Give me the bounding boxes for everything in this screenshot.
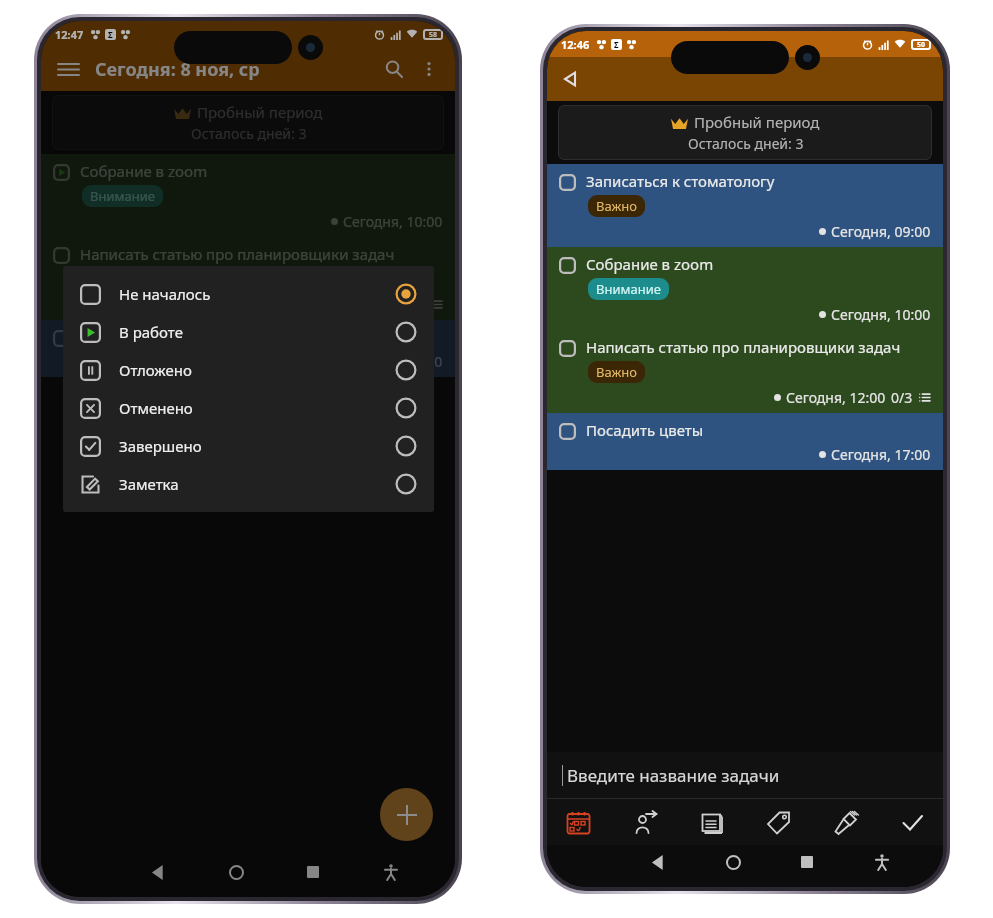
- staticText: Посадить цветы: [80, 327, 443, 347]
- button[interactable]: Не началось: [63, 275, 434, 313]
- button[interactable]: Home: [223, 859, 249, 885]
- staticText: 12:46: [561, 37, 590, 52]
- button[interactable]: Search: [379, 54, 409, 84]
- staticText: Сегодня, 10:00: [831, 305, 931, 324]
- button[interactable]: Back: [561, 64, 591, 94]
- staticText: Внимание: [90, 187, 155, 205]
- button[interactable]: Back: [145, 859, 171, 885]
- staticText: Собрание в zoom: [80, 161, 443, 181]
- staticText: Осталось дней: 3: [191, 124, 307, 143]
- staticText: Важно: [596, 363, 637, 381]
- button[interactable]: Tag: [757, 801, 799, 843]
- button[interactable]: Save: [891, 801, 933, 843]
- button[interactable]: Написать статью про планировщики задач: [547, 330, 943, 413]
- button[interactable]: Recents: [300, 859, 326, 885]
- button[interactable]: Введите название задачи: [547, 752, 943, 798]
- staticText: Написать статью про планировщики задач: [586, 337, 931, 357]
- staticText: Сегодня, 09:00: [831, 222, 931, 241]
- staticText: Отменено: [119, 398, 395, 418]
- staticText: Σ: [108, 29, 113, 40]
- button[interactable]: Отложено: [63, 351, 434, 389]
- staticText: 0/3: [403, 295, 425, 314]
- button[interactable]: Заметка: [63, 465, 434, 503]
- button[interactable]: Отменено: [63, 389, 434, 427]
- staticText: Важно: [90, 270, 131, 288]
- staticText: 12:47: [55, 27, 84, 42]
- button[interactable]: Посадить цветы: [547, 413, 943, 470]
- button[interactable]: Assign person: [624, 801, 666, 843]
- button[interactable]: Собрание в zoom: [547, 247, 943, 330]
- button[interactable]: Пробный период: [558, 105, 932, 160]
- staticText: Не началось: [119, 284, 395, 304]
- staticText: Важно: [596, 197, 637, 215]
- staticText: Осталось дней: 3: [688, 134, 804, 153]
- staticText: Сегодня, 17:00: [343, 352, 443, 371]
- button[interactable]: Back: [645, 849, 671, 875]
- staticText: Заметка: [119, 474, 395, 494]
- staticText: Посадить цветы: [586, 420, 931, 440]
- button[interactable]: Home: [720, 849, 746, 875]
- button[interactable]: More options: [415, 55, 443, 83]
- staticText: Собрание в zoom: [586, 254, 931, 274]
- staticText: Σ: [614, 39, 619, 50]
- button[interactable]: Пробный период: [52, 95, 444, 150]
- staticText: Сегодня, 12:00: [786, 388, 886, 407]
- staticText: В работе: [119, 322, 395, 342]
- button[interactable]: Menu: [53, 54, 83, 84]
- button[interactable]: Завершено: [63, 427, 434, 465]
- button[interactable]: Notes: [691, 801, 733, 843]
- button[interactable]: Собрание в zoom: [41, 154, 455, 237]
- button[interactable]: Записаться к стоматологу: [547, 164, 943, 247]
- staticText: 0/3: [891, 388, 913, 407]
- staticText: Завершено: [119, 436, 395, 456]
- button[interactable]: Set date: [557, 801, 599, 843]
- staticText: Отложено: [119, 360, 395, 380]
- button[interactable]: Color: [824, 801, 866, 843]
- staticText: Сегодня: 8 ноя, ср: [95, 57, 379, 82]
- button[interactable]: Accessibility: [869, 849, 895, 875]
- button[interactable]: В работе: [63, 313, 434, 351]
- staticText: Пробный период: [694, 112, 820, 132]
- button[interactable]: Посадить цветы: [41, 320, 455, 377]
- staticText: Сегодня, 10:00: [343, 212, 443, 231]
- staticText: Написать статью про планировщики задач: [80, 244, 443, 264]
- staticText: Сегодня, 17:00: [831, 445, 931, 464]
- staticText: Сегодня, 12:00: [298, 295, 398, 314]
- button[interactable]: Написать статью про планировщики задач: [41, 237, 455, 320]
- staticText: 50: [917, 40, 926, 50]
- staticText: Записаться к стоматологу: [586, 171, 931, 191]
- button[interactable]: Accessibility: [378, 859, 404, 885]
- button[interactable]: Recents: [794, 849, 820, 875]
- staticText: Введите название задачи: [567, 764, 780, 787]
- button[interactable]: Add task: [380, 788, 433, 841]
- staticText: Внимание: [596, 280, 661, 298]
- staticText: 58: [429, 30, 438, 40]
- staticText: Пробный период: [197, 102, 323, 122]
